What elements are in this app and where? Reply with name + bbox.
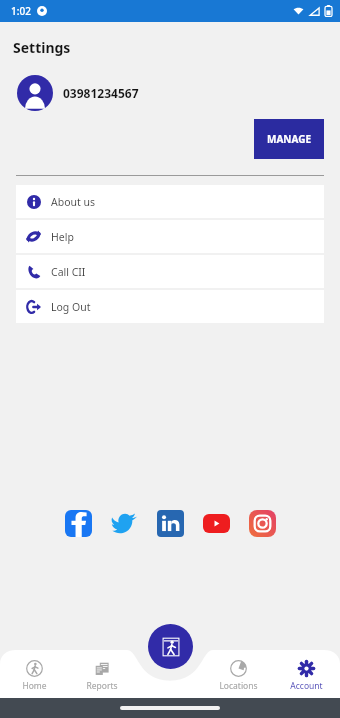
- staticText: 1:02: [11, 4, 31, 18]
- button[interactable]: Home: [0, 650, 68, 698]
- button[interactable]: Account: [272, 650, 340, 698]
- button[interactable]: Help: [16, 220, 324, 253]
- staticText: Home: [22, 680, 47, 692]
- button[interactable]: About us: [16, 185, 324, 218]
- button[interactable]: LinkedIn: [156, 509, 184, 537]
- button[interactable]: YouTube: [202, 509, 230, 537]
- staticText: MANAGE: [267, 132, 312, 146]
- button[interactable]: Track: [148, 624, 193, 669]
- staticText: Call CII: [51, 265, 86, 279]
- staticText: Reports: [86, 680, 118, 692]
- staticText: Help: [51, 230, 74, 244]
- staticText: Account: [290, 680, 323, 692]
- staticText: 03981234567: [63, 85, 139, 101]
- button[interactable]: Instagram: [248, 509, 276, 537]
- button[interactable]: Twitter: [110, 509, 138, 537]
- button[interactable]: Locations: [204, 650, 272, 698]
- button[interactable]: Call CII: [16, 255, 324, 288]
- staticText: About us: [51, 195, 96, 209]
- button[interactable]: MANAGE: [254, 119, 324, 159]
- staticText: Locations: [219, 680, 258, 692]
- staticText: Settings: [13, 38, 71, 57]
- staticText: Log Out: [51, 300, 91, 314]
- button[interactable]: Reports: [68, 650, 136, 698]
- button[interactable]: Facebook: [64, 509, 92, 537]
- button[interactable]: Log Out: [16, 290, 324, 323]
